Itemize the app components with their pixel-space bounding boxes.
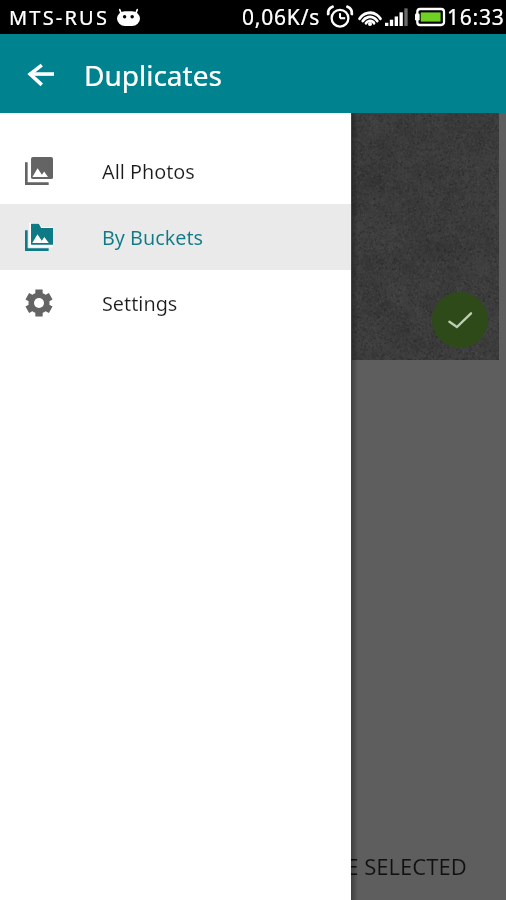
button[interactable]: Selected [432, 292, 488, 348]
button[interactable]: By Buckets [0, 204, 351, 270]
staticText: MTS-RUS [9, 4, 110, 31]
button[interactable]: DELETE SELECTED [268, 841, 480, 891]
staticText: Settings [102, 290, 178, 317]
staticText: 16:33 [447, 3, 505, 32]
button[interactable]: Back [16, 50, 65, 99]
button[interactable]: All Photos [0, 138, 351, 204]
staticText: By Buckets [102, 224, 204, 251]
staticText: 0,06K/s [242, 3, 321, 32]
button[interactable]: Settings [0, 270, 351, 336]
staticText: All Photos [102, 158, 195, 185]
staticText: Duplicates [84, 56, 222, 94]
staticText: DELETE SELECTED [282, 851, 467, 881]
